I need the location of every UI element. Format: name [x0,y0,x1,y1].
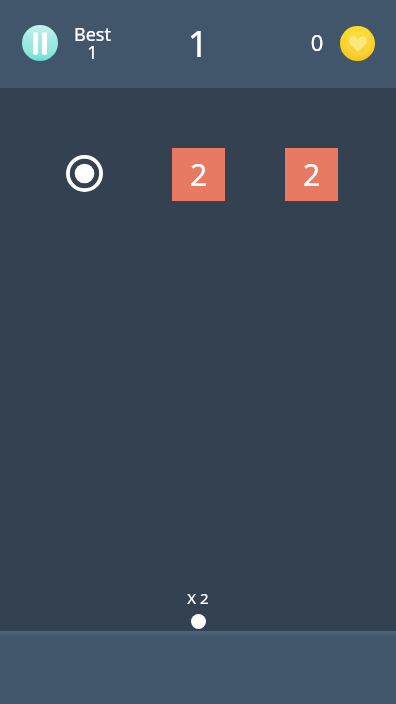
staticText: X 2 [0,588,396,608]
button[interactable]: Pause [22,25,58,61]
button[interactable]: Lives [340,26,375,61]
staticText: 0 [305,27,329,57]
button[interactable]: Best score [62,22,122,72]
staticText: Best [74,22,111,47]
staticText: 1 [87,40,98,65]
staticText: 2 [303,154,321,195]
button[interactable]: 2 [172,148,225,201]
staticText: 2 [190,154,208,195]
button[interactable]: 2 [285,148,338,201]
staticText: 1 [0,19,396,68]
button[interactable]: Extra ball power up [66,155,103,192]
